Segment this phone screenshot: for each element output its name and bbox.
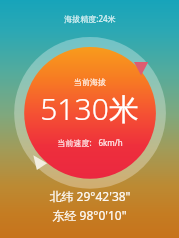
button[interactable]: 海拔精度:24米 [0,13,179,24]
staticText: 东经 98°0'10" [52,207,127,223]
staticText: 当前海拔 [74,77,106,87]
staticText: 当前速度: [57,137,92,148]
button[interactable]: Current altitude 5130 meters [40,77,139,148]
staticText: 海拔精度:24米 [64,13,116,24]
staticText: 6km/h [98,137,123,148]
button[interactable]: 北纬 29°42'38" [0,188,179,223]
staticText: 5130米 [40,88,139,129]
staticText: 北纬 29°42'38" [49,188,131,204]
